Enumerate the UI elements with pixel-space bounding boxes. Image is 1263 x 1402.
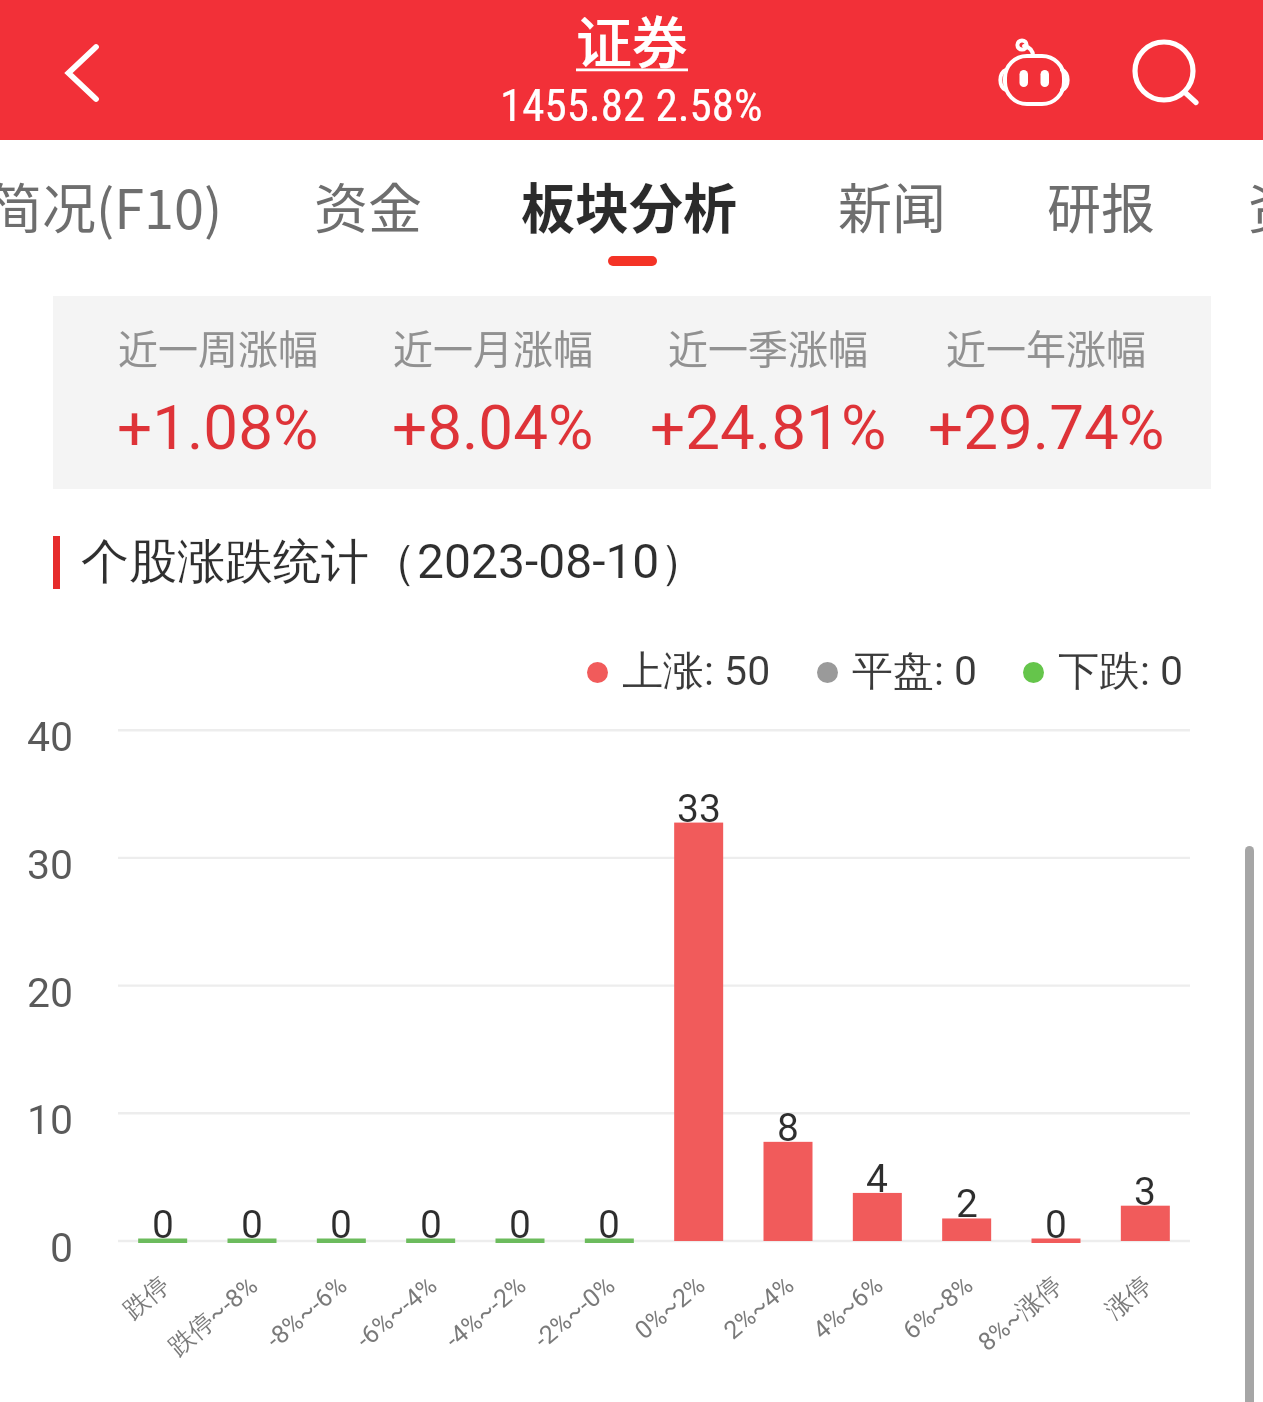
staticText: -6%~-4% [350, 1270, 443, 1354]
button[interactable]: 近一季涨幅 [618, 296, 918, 489]
button[interactable]: 下跌: 0 [1023, 646, 1203, 696]
staticText: +8.04% [392, 391, 594, 464]
staticText: 2 [956, 1181, 978, 1227]
staticText: 4 [866, 1156, 888, 1202]
staticText: -8%~-6% [260, 1270, 353, 1354]
staticText: 1455.82 2.58% [500, 79, 763, 132]
staticText: 上涨: 50 [622, 646, 771, 696]
button[interactable]: 近一月涨幅 [343, 296, 643, 489]
button[interactable]: Search [1128, 35, 1204, 111]
staticText: 0 [1045, 1202, 1067, 1248]
button[interactable]: 研报 [1047, 166, 1155, 242]
staticText: 20 [27, 969, 74, 1017]
staticText: 近一季涨幅 [668, 318, 868, 376]
button[interactable]: 新闻 [838, 166, 946, 242]
staticText: 30 [27, 841, 74, 889]
staticText: 0%~2% [629, 1270, 711, 1345]
button[interactable]: 近一年涨幅 [896, 296, 1196, 489]
staticText: 0 [152, 1202, 174, 1248]
button[interactable]: 上涨: 50 [587, 646, 767, 696]
staticText: 8 [777, 1105, 799, 1151]
staticText: 33 [677, 786, 721, 832]
staticText: 0 [50, 1224, 74, 1272]
staticText: -4%~-2% [439, 1270, 532, 1354]
staticText: 0 [420, 1202, 442, 1248]
button[interactable]: AI assistant [994, 34, 1076, 112]
staticText: 资金 [314, 166, 422, 242]
button[interactable]: 平盘: 0 [817, 646, 997, 696]
staticText: 证券 [576, 0, 688, 79]
button[interactable]: 资金 [1248, 166, 1263, 242]
staticText: 平盘: 0 [852, 646, 978, 696]
staticText: +1.08% [117, 391, 319, 464]
staticText: +24.81% [650, 391, 887, 464]
staticText: 4%~6% [807, 1270, 889, 1345]
staticText: 近一周涨幅 [118, 318, 318, 376]
button[interactable]: 资金 [314, 166, 422, 242]
staticText: 近一年涨幅 [946, 318, 1146, 376]
staticText: 涨停 [1099, 1269, 1157, 1325]
staticText: 研报 [1047, 166, 1155, 242]
staticText: 新闻 [838, 166, 946, 242]
button[interactable]: Back [40, 28, 106, 112]
staticText: 2%~4% [718, 1270, 800, 1345]
staticText: 跌停 [117, 1269, 175, 1325]
staticText: 下跌: 0 [1058, 646, 1184, 696]
staticText: 10 [27, 1096, 74, 1144]
staticText: 40 [27, 713, 74, 761]
staticText: 0 [330, 1202, 352, 1248]
staticText: 8%~涨停 [972, 1269, 1068, 1357]
staticText: 资金 [1248, 166, 1263, 242]
staticText: 近一月涨幅 [393, 318, 593, 376]
staticText: 6%~8% [897, 1270, 979, 1345]
staticText: 0 [241, 1202, 263, 1248]
button[interactable]: 简况(F10) [0, 166, 223, 242]
button[interactable]: 近一周涨幅 [68, 296, 368, 489]
staticText: 跌停~-8% [162, 1269, 264, 1362]
staticText: 简况(F10) [0, 166, 223, 242]
staticText: 0 [509, 1202, 531, 1248]
staticText: 0 [598, 1202, 620, 1248]
staticText: 个股涨跌统计（2023-08-10） [81, 532, 708, 590]
button[interactable]: 板块分析 [521, 166, 737, 242]
staticText: +29.74% [928, 391, 1165, 464]
staticText: 3 [1134, 1169, 1156, 1215]
staticText: -2%~-0% [528, 1270, 621, 1354]
staticText: 板块分析 [521, 166, 737, 242]
